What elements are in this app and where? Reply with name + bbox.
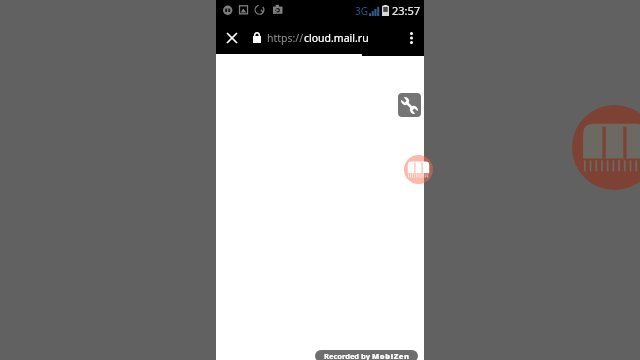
staticText: https:// (267, 31, 304, 45)
button[interactable]: Settings (398, 93, 421, 117)
staticText: Recorded by (324, 351, 372, 360)
button[interactable]: More options (398, 21, 424, 54)
staticText: 23:57 (392, 3, 421, 18)
button[interactable]: Close (216, 21, 247, 54)
staticText: cloud.mail.ru (304, 31, 369, 45)
staticText: MobiZen (372, 351, 410, 360)
staticText: 3G (355, 4, 368, 18)
button[interactable]: https:// (247, 21, 398, 54)
